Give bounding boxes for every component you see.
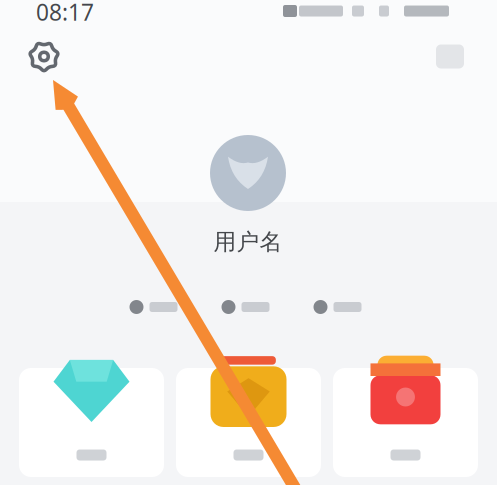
staticText: 用户名: [213, 228, 282, 256]
button[interactable]: [221, 300, 269, 314]
button[interactable]: [19, 368, 164, 477]
button[interactable]: [129, 300, 177, 314]
button[interactable]: Settings: [21, 33, 67, 79]
button[interactable]: [313, 300, 361, 314]
staticText: 08:17: [36, 0, 94, 27]
button[interactable]: More: [427, 33, 473, 79]
button[interactable]: [176, 368, 321, 477]
button[interactable]: [333, 368, 478, 477]
button[interactable]: Profile photo: [210, 135, 286, 211]
